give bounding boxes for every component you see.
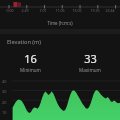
button[interactable]: 33 <box>60 50 120 74</box>
staticText: 10 <box>2 110 7 115</box>
button[interactable]: 16 <box>0 50 60 74</box>
button[interactable]: Elevation (m) <box>0 34 120 120</box>
staticText: 0:00 <box>2 8 18 13</box>
staticText: 23:44 <box>102 8 118 13</box>
staticText: 19:35 <box>87 8 103 13</box>
button[interactable]: Elevation profile chart <box>0 77 120 120</box>
staticText: Maximum <box>79 67 101 73</box>
staticText: Time (h:m:s) <box>47 20 73 26</box>
staticText: 11:06 <box>52 8 68 13</box>
staticText: 2:49 <box>17 8 33 13</box>
staticText: 15:05 <box>69 8 85 13</box>
staticText: 33 <box>84 51 97 66</box>
staticText: Minimum <box>20 67 41 73</box>
staticText: Elevation (m) <box>7 38 41 46</box>
staticText: 20 <box>2 100 7 105</box>
staticText: 16 <box>24 51 37 66</box>
button[interactable]: 0:00 <box>0 0 120 29</box>
staticText: 40 <box>2 79 7 84</box>
staticText: 7:01 <box>35 8 51 13</box>
staticText: 30 <box>2 89 7 94</box>
